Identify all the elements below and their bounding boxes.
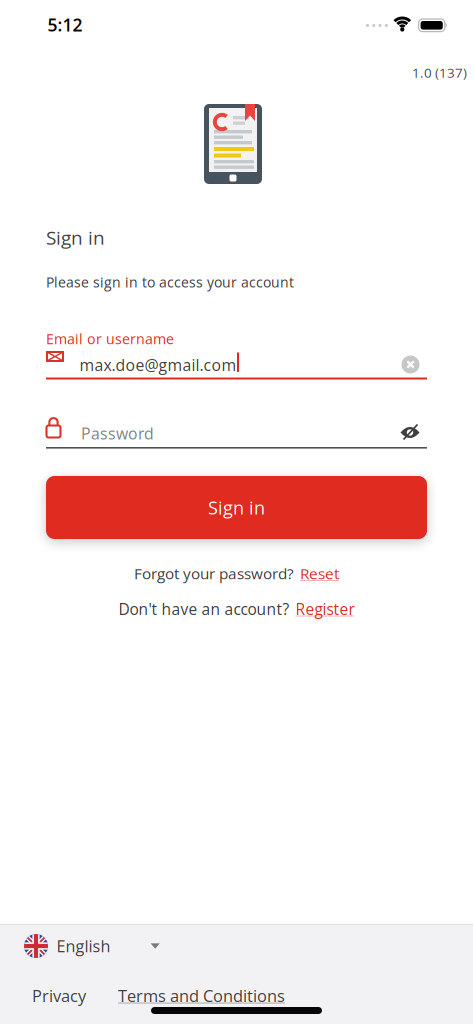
staticText: Register bbox=[295, 598, 354, 620]
staticText: Sign in bbox=[46, 224, 105, 250]
staticText: Email or username bbox=[46, 329, 174, 348]
staticText: Privacy bbox=[32, 984, 86, 1007]
staticText: Don't have an account? bbox=[118, 598, 289, 620]
button[interactable]: Clear text bbox=[397, 351, 423, 377]
button[interactable]: Sign in bbox=[46, 476, 427, 539]
staticText: Password bbox=[81, 422, 154, 444]
staticText: max.doe@gmail.com bbox=[79, 354, 236, 375]
button[interactable]: Reset bbox=[300, 563, 339, 584]
button[interactable]: Register bbox=[295, 598, 354, 620]
staticText: Please sign in to access your account bbox=[46, 272, 294, 292]
staticText: Forgot your password? bbox=[134, 563, 294, 584]
button[interactable]: Password bbox=[46, 417, 427, 449]
staticText: Terms and Conditions bbox=[118, 984, 285, 1007]
button[interactable]: Choose language bbox=[24, 930, 264, 962]
staticText: Reset bbox=[300, 563, 339, 584]
button[interactable]: Email or username bbox=[46, 349, 427, 380]
staticText: 1.0 (137) bbox=[412, 63, 467, 82]
staticText: 5:12 bbox=[47, 13, 82, 37]
staticText: Sign in bbox=[208, 495, 265, 520]
staticText: English bbox=[56, 935, 110, 957]
button[interactable]: Privacy bbox=[32, 980, 86, 1011]
button[interactable]: Show password bbox=[396, 420, 424, 444]
button[interactable]: Terms and Conditions bbox=[118, 980, 285, 1011]
